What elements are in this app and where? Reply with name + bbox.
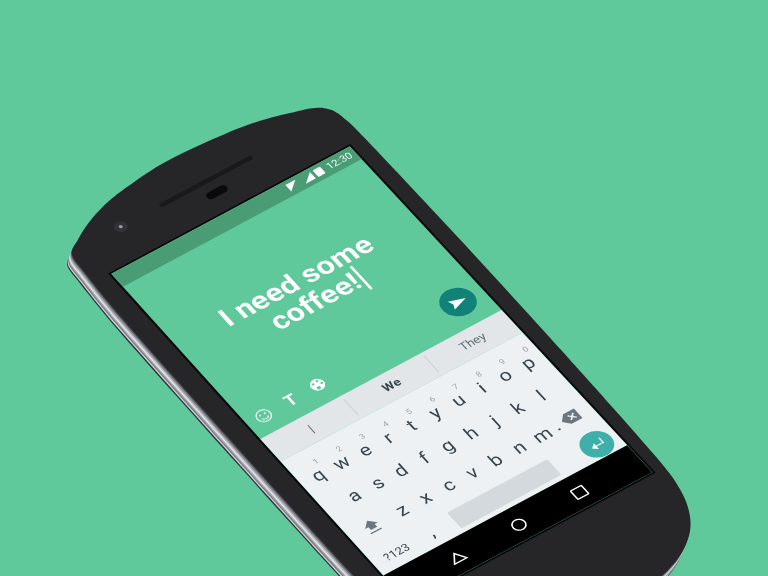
button[interactable]: Phone showing a message being typed	[0, 0, 768, 576]
